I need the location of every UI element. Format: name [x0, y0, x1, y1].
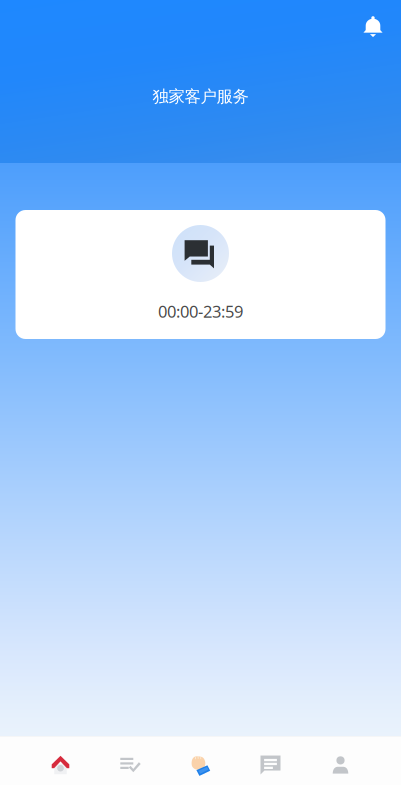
- staticText: 00:00-23:59: [158, 300, 243, 322]
- button[interactable]: Messages: [235, 736, 305, 785]
- button[interactable]: 00:00-23:59: [15, 210, 385, 339]
- button[interactable]: Tasks: [95, 736, 165, 785]
- button[interactable]: Actions: [165, 736, 235, 785]
- button[interactable]: Profile: [305, 736, 375, 785]
- button[interactable]: Notifications: [351, 5, 395, 49]
- staticText: 独家客户服务: [152, 86, 248, 107]
- button[interactable]: Home: [25, 736, 95, 785]
